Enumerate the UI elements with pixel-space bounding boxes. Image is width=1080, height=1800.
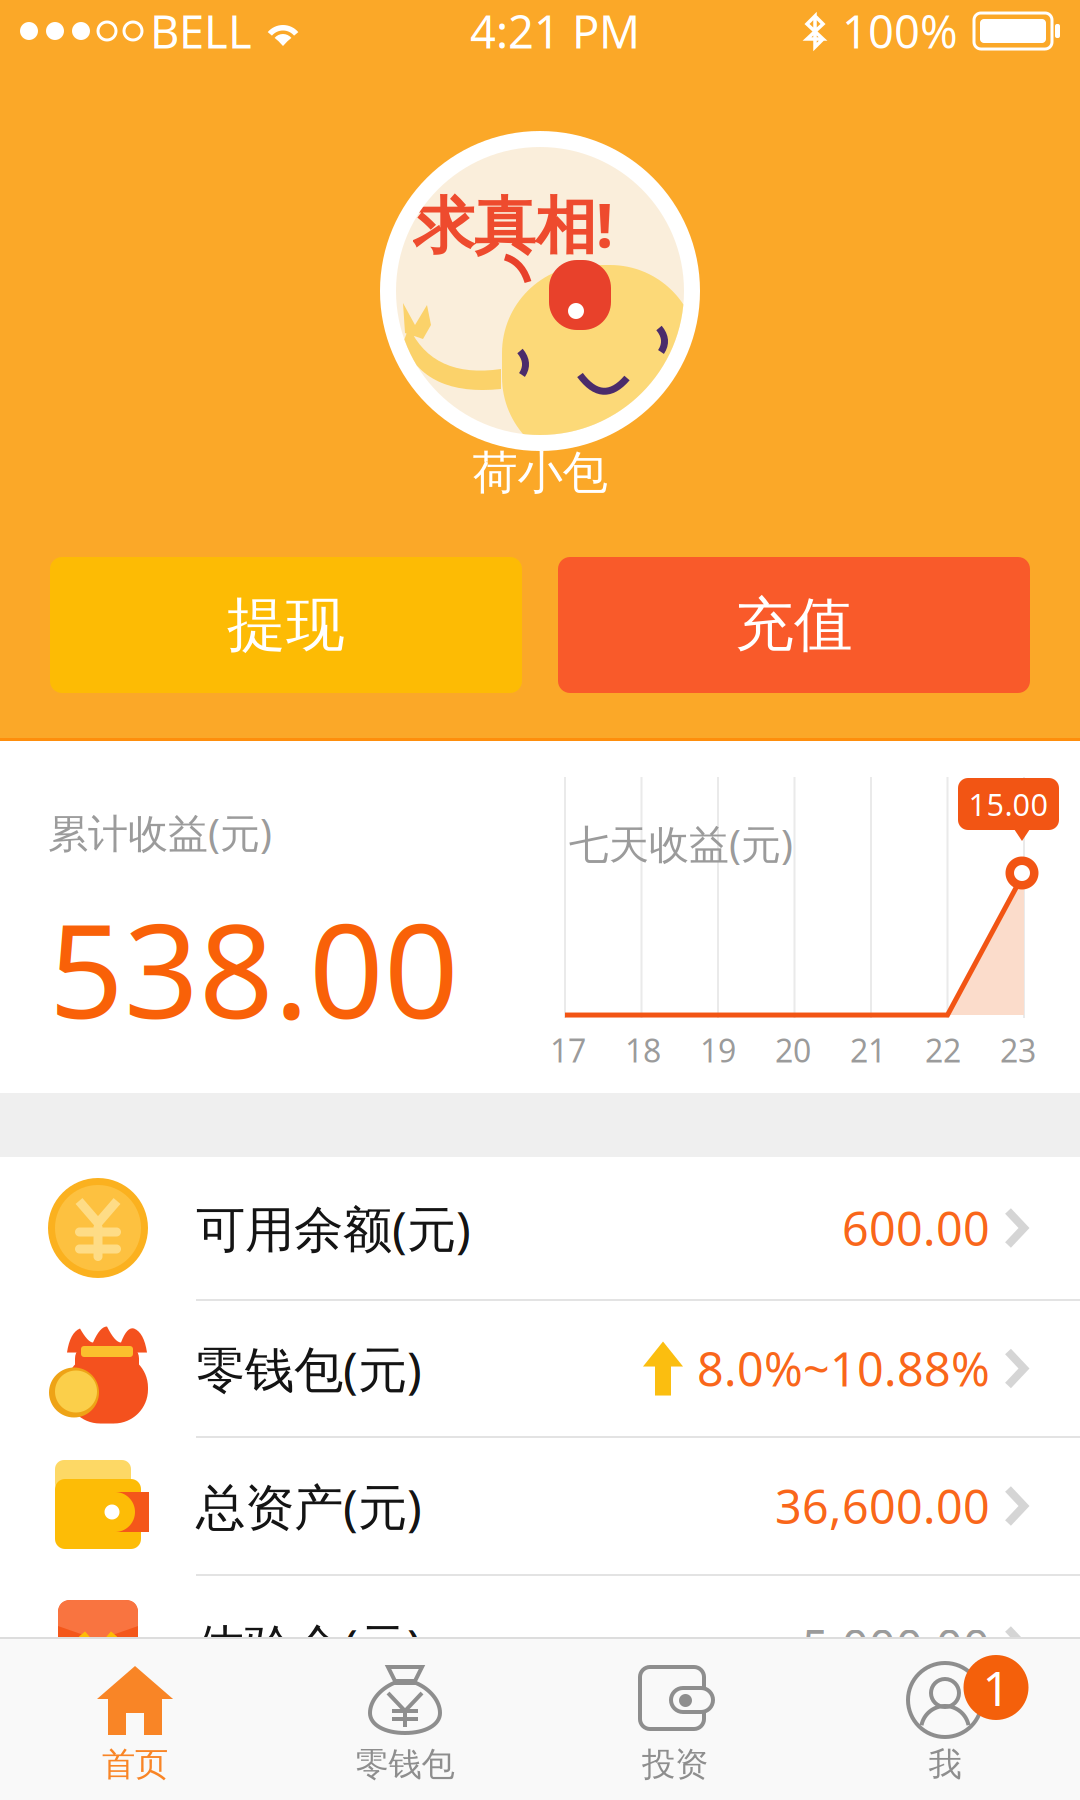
button[interactable]: 投资 (540, 1637, 810, 1800)
staticText: 求真相! (413, 183, 613, 265)
button[interactable]: 充值 (558, 557, 1030, 693)
staticText: 4:21 PM (470, 1, 640, 61)
button[interactable]: 提现 (50, 557, 522, 693)
staticText: 总资产(元) (196, 1473, 422, 1539)
button[interactable]: 零钱包(元) (0, 1301, 1080, 1436)
staticText: 22 (925, 1029, 961, 1071)
staticText: 600.00 (842, 1197, 990, 1259)
staticText: 充值 (735, 589, 853, 661)
staticText: 18 (625, 1029, 661, 1071)
staticText: 8.0%~10.88% (697, 1337, 990, 1399)
staticText: 21 (850, 1029, 886, 1071)
staticText: 累计收益(元) (48, 806, 272, 859)
staticText: 投资 (642, 1744, 708, 1785)
staticText: 零钱包(元) (196, 1336, 422, 1401)
staticText: 538.00 (49, 881, 459, 1054)
staticText: 23 (1000, 1029, 1036, 1071)
button[interactable]: 首页 (0, 1637, 270, 1800)
button[interactable]: 可用余额(元) (0, 1157, 1080, 1299)
staticText: 36,600.00 (775, 1475, 990, 1537)
staticText: 15.00 (968, 784, 1048, 824)
staticText: 100% (842, 1, 958, 61)
staticText: 20 (775, 1029, 811, 1071)
staticText: 17 (550, 1029, 586, 1071)
staticText: 1 (982, 1656, 1009, 1719)
staticText: 5,000.00 (802, 1615, 990, 1677)
staticText: 零钱包 (355, 1744, 454, 1785)
staticText: 我 (928, 1744, 961, 1785)
button[interactable]: 零钱包 (270, 1637, 540, 1800)
staticText: 首页 (102, 1744, 168, 1785)
button[interactable]: 总资产(元) (0, 1438, 1080, 1574)
staticText: BELL (150, 1, 252, 61)
staticText: 荷小包 (472, 445, 607, 501)
button[interactable]: 体验金(元) (0, 1576, 1080, 1716)
button[interactable]: 我 (810, 1637, 1080, 1800)
staticText: 19 (700, 1029, 736, 1071)
staticText: 提现 (227, 589, 345, 661)
staticText: 七天收益(元) (569, 817, 793, 870)
staticText: 可用余额(元) (196, 1195, 471, 1261)
staticText: 体验金(元) (196, 1613, 422, 1679)
